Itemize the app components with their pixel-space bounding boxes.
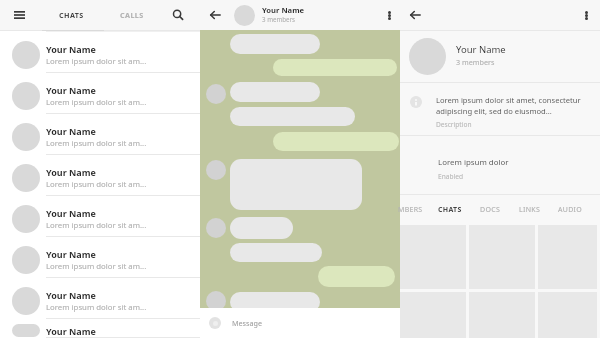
staticText: Lorem ipsum dolor sit am... bbox=[46, 138, 147, 149]
staticText: Your Name bbox=[46, 125, 96, 137]
staticText: CHATS bbox=[438, 205, 462, 215]
staticText: Message bbox=[232, 318, 262, 328]
button[interactable]: Your Name bbox=[0, 73, 200, 114]
staticText: LINKS bbox=[519, 205, 541, 215]
staticText: AUDIO bbox=[558, 205, 583, 215]
staticText: Lorem ipsum dolor sit am... bbox=[46, 97, 147, 108]
staticText: Lorem ipsum dolor sit am... bbox=[46, 56, 147, 67]
staticText: Your Name bbox=[46, 84, 96, 96]
button[interactable]: More options bbox=[576, 5, 596, 25]
button[interactable]: LINKS bbox=[510, 195, 550, 224]
button[interactable]: Message bbox=[200, 308, 400, 338]
staticText: Your Name bbox=[46, 207, 96, 219]
staticText: Description bbox=[436, 120, 472, 129]
button[interactable]: MBERS bbox=[390, 195, 430, 224]
staticText: Lorem ipsum dolor bbox=[438, 157, 509, 168]
staticText: Your Name bbox=[46, 166, 96, 178]
button[interactable]: Your Name bbox=[0, 196, 200, 237]
staticText: MBERS bbox=[398, 205, 423, 215]
button[interactable]: Back bbox=[402, 2, 428, 28]
button[interactable]: Your Name bbox=[0, 114, 200, 155]
button[interactable]: Your Name bbox=[0, 32, 200, 73]
button[interactable]: Your Name bbox=[0, 237, 200, 278]
button[interactable]: Menu bbox=[6, 2, 32, 28]
staticText: Your Name bbox=[46, 248, 96, 260]
button[interactable]: Your Name bbox=[0, 319, 200, 338]
button[interactable]: Your Name bbox=[0, 278, 200, 319]
staticText: 3 members bbox=[456, 57, 495, 67]
button[interactable]: Your Name bbox=[0, 155, 200, 196]
button[interactable]: Back bbox=[202, 2, 228, 28]
staticText: 3 members bbox=[262, 15, 296, 23]
button[interactable]: Search bbox=[167, 4, 189, 26]
staticText: Your Name bbox=[262, 5, 305, 15]
staticText: Lorem ipsum dolor sit am... bbox=[46, 179, 147, 190]
button[interactable]: AUDIO bbox=[550, 195, 590, 224]
staticText: Your Name bbox=[46, 289, 96, 301]
staticText: CHATS bbox=[59, 10, 84, 20]
staticText: Lorem ipsum dolor sit amet, consectetur … bbox=[436, 95, 581, 116]
staticText: CALLS bbox=[120, 10, 144, 20]
staticText: Your Name bbox=[456, 43, 506, 56]
button[interactable]: Lorem ipsum dolor bbox=[400, 136, 600, 194]
staticText: Enabled bbox=[438, 172, 463, 181]
staticText: Lorem ipsum dolor sit am... bbox=[46, 261, 147, 272]
staticText: DOCS bbox=[480, 205, 501, 215]
staticText: Your Name bbox=[46, 325, 96, 337]
staticText: Your Name bbox=[46, 43, 96, 55]
button[interactable]: Your Name bbox=[400, 31, 600, 82]
button[interactable]: CHATS bbox=[56, 2, 87, 28]
button[interactable]: DOCS bbox=[470, 195, 510, 224]
staticText: Lorem ipsum dolor sit am... bbox=[46, 220, 147, 231]
button[interactable]: Lorem ipsum dolor sit amet, consectetur … bbox=[400, 83, 600, 135]
staticText: Lorem ipsum dolor sit am... bbox=[46, 302, 147, 313]
button[interactable]: CALLS bbox=[117, 2, 147, 28]
button[interactable]: More options bbox=[379, 5, 399, 25]
button[interactable]: CHATS bbox=[430, 195, 470, 224]
